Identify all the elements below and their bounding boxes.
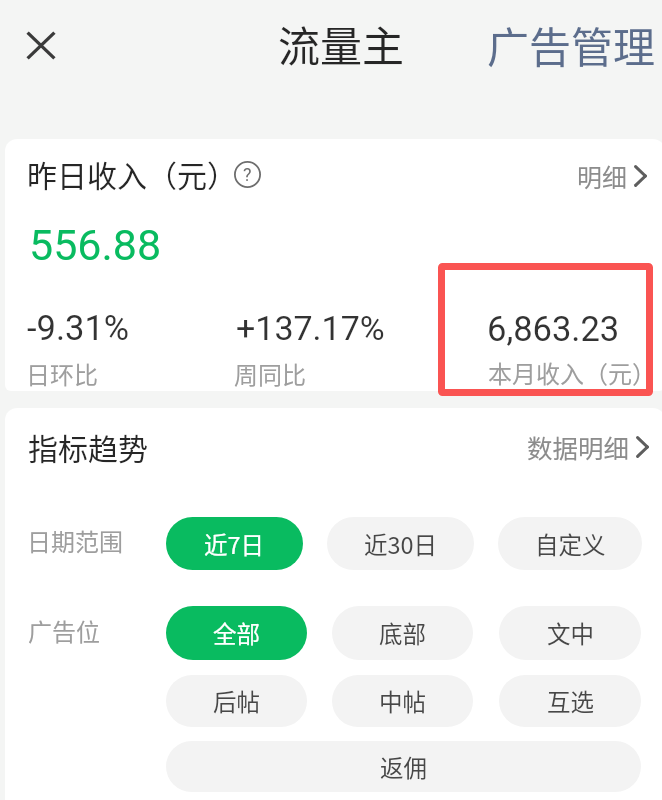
button[interactable]: 文中 — [499, 606, 641, 660]
button[interactable]: Close — [17, 22, 64, 69]
staticText: 日期范围 — [27, 523, 123, 558]
staticText: 广告位 — [28, 613, 100, 648]
staticText: 返佣 — [380, 750, 427, 784]
staticText: 6,863.23 — [487, 309, 620, 349]
button[interactable]: 自定义 — [498, 517, 642, 570]
button[interactable]: 全部 — [166, 606, 307, 660]
staticText: 昨日收入（元） — [27, 152, 237, 195]
staticText: 近30日 — [364, 527, 438, 561]
button[interactable]: 数据明细 — [527, 428, 649, 465]
staticText: -9.31% — [27, 308, 130, 348]
staticText: 互选 — [547, 684, 594, 718]
button[interactable]: 中帖 — [332, 675, 473, 727]
button[interactable]: 返佣 — [166, 741, 641, 792]
staticText: 数据明细 — [527, 428, 630, 465]
staticText: 指标趋势 — [28, 425, 148, 468]
staticText: 周同比 — [234, 356, 306, 391]
staticText: 流量主 — [278, 13, 405, 74]
button[interactable]: 近7日 — [166, 517, 303, 570]
staticText: 自定义 — [535, 527, 606, 561]
staticText: 556.88 — [29, 220, 162, 270]
staticText: ? — [243, 164, 252, 185]
button[interactable]: 明细 — [577, 158, 647, 194]
button[interactable]: 近30日 — [327, 517, 474, 570]
staticText: 中帖 — [379, 684, 426, 718]
button[interactable]: 后帖 — [166, 675, 307, 727]
staticText: 近7日 — [204, 527, 265, 561]
button[interactable]: 互选 — [499, 675, 641, 727]
staticText: 文中 — [547, 616, 594, 650]
staticText: 本月收入（元） — [488, 355, 656, 390]
staticText: +137.17% — [236, 308, 385, 348]
button[interactable]: 广告管理 — [487, 14, 656, 75]
staticText: 全部 — [213, 616, 260, 650]
staticText: 后帖 — [213, 684, 260, 718]
staticText: 广告管理 — [487, 14, 656, 75]
staticText: 明细 — [577, 158, 628, 194]
staticText: 底部 — [379, 616, 426, 650]
button[interactable]: 底部 — [332, 606, 473, 660]
staticText: 日环比 — [26, 356, 98, 391]
